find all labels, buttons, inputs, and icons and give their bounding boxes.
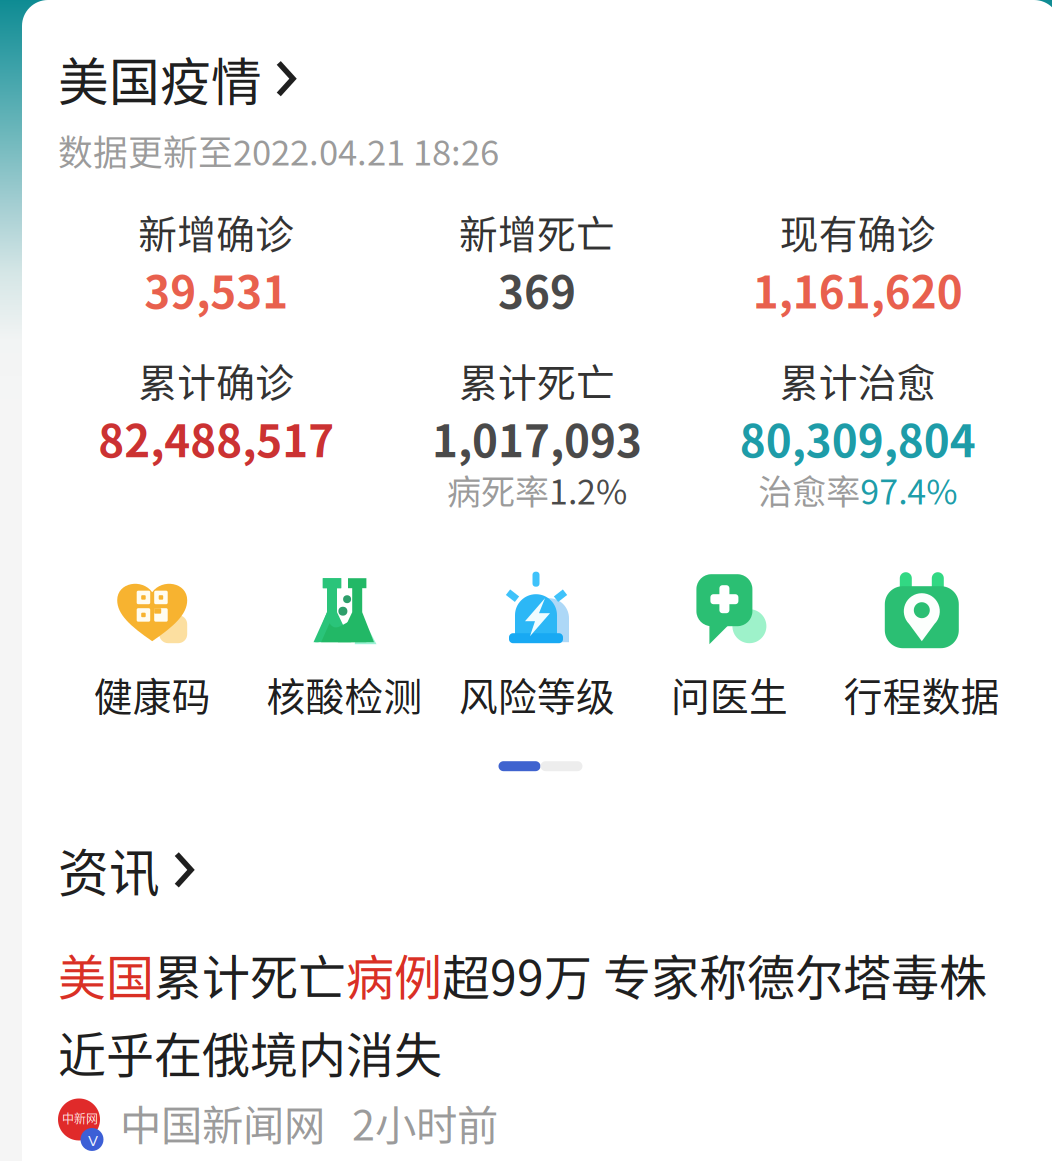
button[interactable]: 美国疫情 xyxy=(22,42,1052,115)
staticText: 369 xyxy=(498,258,576,321)
staticText: 累计确诊 xyxy=(138,352,294,408)
staticText: 数据更新至2022.04.21 18:26 xyxy=(58,125,499,176)
staticText: 累计治愈 xyxy=(780,352,936,408)
staticText: 82,488,517 xyxy=(98,406,334,470)
staticText: 现有确诊 xyxy=(780,204,936,260)
staticText: 中新网 xyxy=(62,1109,98,1127)
staticText: 美国 xyxy=(58,940,154,1009)
staticText: 资讯 xyxy=(58,833,160,907)
staticText: 80,309,804 xyxy=(740,406,976,470)
staticText: 39,531 xyxy=(144,258,288,321)
button[interactable]: 健康码 xyxy=(56,568,248,722)
button[interactable]: 问医生 xyxy=(633,568,826,722)
button[interactable]: 风险等级 xyxy=(441,568,633,722)
staticText: 超99万 专家称德尔塔毒株 xyxy=(442,940,987,1009)
staticText: 美国疫情 xyxy=(58,42,262,115)
staticText: 新增确诊 xyxy=(138,204,294,260)
staticText: 病死率 xyxy=(447,465,549,514)
staticText: 中国新闻网 2小时前 xyxy=(120,1093,498,1152)
staticText: 1.2% xyxy=(549,465,627,514)
staticText: 97.4% xyxy=(860,465,957,514)
staticText: 风险等级 xyxy=(459,666,615,722)
staticText: 1,161,620 xyxy=(753,258,963,321)
staticText: 病例 xyxy=(346,940,442,1009)
staticText: 近乎在俄境内消失 xyxy=(58,1017,442,1087)
staticText: 治愈率 xyxy=(758,465,860,514)
staticText: 新增死亡 xyxy=(459,204,615,260)
staticText: 累计死亡 xyxy=(459,352,615,408)
button[interactable]: 核酸检测 xyxy=(248,568,441,722)
staticText: 累计死亡 xyxy=(154,940,346,1009)
button[interactable]: 行程数据 xyxy=(826,568,1018,722)
staticText: 问医生 xyxy=(671,666,788,722)
button[interactable]: 美国 xyxy=(22,940,1052,1152)
staticText: V xyxy=(88,1132,98,1150)
staticText: 行程数据 xyxy=(844,666,1000,722)
button[interactable]: 资讯 xyxy=(22,833,1052,907)
staticText: 核酸检测 xyxy=(267,666,423,722)
staticText: 1,017,093 xyxy=(432,406,642,470)
staticText: 健康码 xyxy=(94,666,211,722)
